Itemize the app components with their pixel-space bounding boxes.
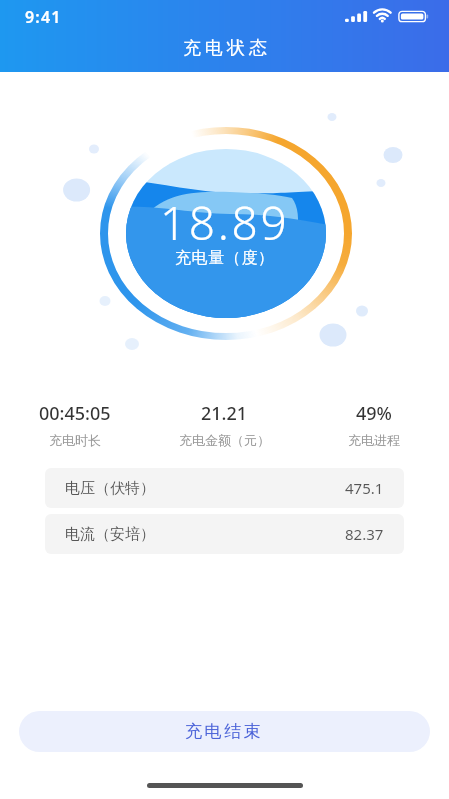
staticText: 充电金额（元） (179, 432, 270, 448)
staticText: 充电进程 (348, 432, 400, 448)
staticText: 475.1 (345, 478, 384, 498)
staticText: 21.21 (201, 401, 248, 426)
staticText: 49% (356, 401, 392, 426)
staticText: 充电时长 (49, 432, 101, 448)
staticText: 电流（安培） (65, 525, 155, 544)
button[interactable]: 充电结束 (19, 711, 430, 752)
button[interactable]: 电压（伏特） (45, 468, 404, 508)
staticText: 18.89 (160, 191, 290, 254)
staticText: 00:45:05 (39, 401, 111, 426)
staticText: 9:41 (25, 6, 62, 28)
staticText: 电压（伏特） (65, 479, 155, 498)
staticText: 充电量（度） (175, 248, 275, 268)
staticText: 充电结束 (185, 721, 264, 742)
staticText: 82.37 (345, 524, 384, 544)
staticText: 充电状态 (181, 37, 269, 60)
button[interactable]: 电流（安培） (45, 514, 404, 554)
